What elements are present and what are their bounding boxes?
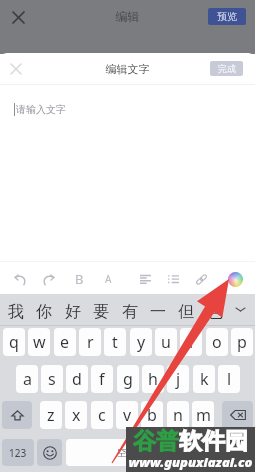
button[interactable]: d bbox=[66, 365, 88, 393]
staticText: 请输入文字 bbox=[16, 103, 66, 116]
button[interactable]: y bbox=[130, 328, 152, 356]
button[interactable]: 123 bbox=[2, 439, 34, 466]
button[interactable]: Bold bbox=[68, 268, 90, 290]
staticText: s bbox=[48, 368, 56, 390]
button[interactable]: Close editor bbox=[8, 61, 24, 77]
staticText: l bbox=[227, 368, 232, 390]
staticText: x bbox=[72, 404, 81, 426]
button[interactable]: 色 bbox=[201, 296, 229, 327]
button[interactable]: f bbox=[91, 365, 113, 393]
button[interactable]: Emoji bbox=[37, 439, 62, 466]
staticText: w bbox=[33, 331, 46, 353]
button[interactable]: Font size bbox=[97, 268, 119, 290]
button[interactable]: x bbox=[65, 401, 87, 429]
staticText: A bbox=[105, 272, 112, 286]
staticText: 编辑文字 bbox=[0, 62, 255, 76]
staticText: t bbox=[112, 331, 118, 353]
button[interactable]: 好 bbox=[59, 296, 87, 327]
staticText: u bbox=[161, 331, 171, 353]
staticText: 有 bbox=[122, 302, 138, 322]
staticText: 但 bbox=[178, 302, 194, 322]
button[interactable]: Undo bbox=[9, 268, 31, 290]
staticText: q bbox=[9, 331, 19, 353]
staticText: n bbox=[173, 404, 183, 426]
button[interactable]: e bbox=[54, 328, 76, 356]
staticText: 编辑 bbox=[0, 9, 255, 24]
button[interactable]: 换行 bbox=[191, 439, 253, 466]
button[interactable]: Bullet list bbox=[162, 268, 184, 290]
button[interactable]: 一 bbox=[144, 296, 172, 327]
button[interactable]: s bbox=[41, 365, 63, 393]
button[interactable]: j bbox=[167, 365, 189, 393]
staticText: a bbox=[23, 368, 32, 390]
staticText: b bbox=[147, 404, 157, 426]
staticText: 完成 bbox=[218, 63, 236, 74]
staticText: 要 bbox=[93, 302, 109, 322]
staticText: e bbox=[60, 331, 70, 353]
button[interactable]: More candidates bbox=[227, 294, 254, 325]
staticText: 空格 bbox=[117, 446, 137, 459]
button[interactable]: Align bbox=[134, 268, 156, 290]
staticText: k bbox=[200, 368, 209, 390]
staticText: 123 bbox=[9, 446, 27, 460]
button[interactable]: Backspace bbox=[222, 401, 253, 429]
staticText: h bbox=[148, 368, 158, 390]
staticText: 谷普 bbox=[133, 427, 179, 452]
button[interactable]: 你 bbox=[30, 296, 58, 327]
button[interactable]: Close bbox=[8, 7, 28, 27]
button[interactable]: 预览 bbox=[208, 8, 246, 25]
button[interactable]: t bbox=[104, 328, 126, 356]
button[interactable]: h bbox=[142, 365, 164, 393]
staticText: 好 bbox=[65, 302, 81, 322]
staticText: y bbox=[137, 331, 146, 353]
button[interactable]: q bbox=[3, 328, 25, 356]
button[interactable]: a bbox=[16, 365, 38, 393]
button[interactable]: Text colour bbox=[224, 268, 246, 290]
button[interactable]: m bbox=[192, 401, 214, 429]
staticText: d bbox=[72, 368, 82, 390]
button[interactable]: p bbox=[231, 328, 253, 356]
staticText: 预览 bbox=[217, 10, 237, 23]
staticText: z bbox=[47, 404, 55, 426]
button[interactable]: 但 bbox=[172, 296, 200, 327]
staticText: v bbox=[123, 404, 132, 426]
button[interactable]: Shift bbox=[2, 401, 32, 429]
button[interactable]: u bbox=[155, 328, 177, 356]
staticText: p bbox=[237, 331, 247, 353]
staticText: g bbox=[123, 368, 133, 390]
staticText: f bbox=[99, 368, 105, 390]
staticText: 软件园 bbox=[179, 427, 248, 452]
button[interactable]: z bbox=[40, 401, 62, 429]
button[interactable]: c bbox=[91, 401, 113, 429]
staticText: i bbox=[189, 331, 194, 353]
button[interactable]: 完成 bbox=[210, 61, 243, 76]
staticText: 我 bbox=[8, 302, 24, 322]
staticText: o bbox=[212, 331, 222, 353]
button[interactable]: n bbox=[167, 401, 189, 429]
button[interactable]: b bbox=[141, 401, 163, 429]
button[interactable]: o bbox=[206, 328, 228, 356]
staticText: r bbox=[87, 331, 94, 353]
staticText: c bbox=[98, 404, 106, 426]
button[interactable]: Redo bbox=[37, 268, 59, 290]
staticText: m bbox=[196, 404, 211, 426]
button[interactable]: l bbox=[218, 365, 240, 393]
staticText: www.gupuxiazai.com bbox=[126, 453, 255, 472]
staticText: 你 bbox=[36, 302, 52, 322]
button[interactable]: r bbox=[79, 328, 101, 356]
button[interactable]: v bbox=[116, 401, 138, 429]
button[interactable]: g bbox=[117, 365, 139, 393]
staticText: j bbox=[176, 368, 181, 390]
button[interactable]: 要 bbox=[87, 296, 115, 327]
button[interactable]: 我 bbox=[2, 296, 30, 327]
button[interactable]: i bbox=[180, 328, 202, 356]
button[interactable]: 有 bbox=[116, 296, 144, 327]
button[interactable]: k bbox=[193, 365, 215, 393]
staticText: 色 bbox=[207, 302, 223, 322]
button[interactable]: Insert link bbox=[190, 268, 212, 290]
button[interactable]: Space bbox=[66, 439, 188, 466]
staticText: 换行 bbox=[212, 446, 232, 459]
staticText: B bbox=[75, 270, 84, 288]
button[interactable]: w bbox=[28, 328, 50, 356]
staticText: 一 bbox=[150, 302, 166, 322]
